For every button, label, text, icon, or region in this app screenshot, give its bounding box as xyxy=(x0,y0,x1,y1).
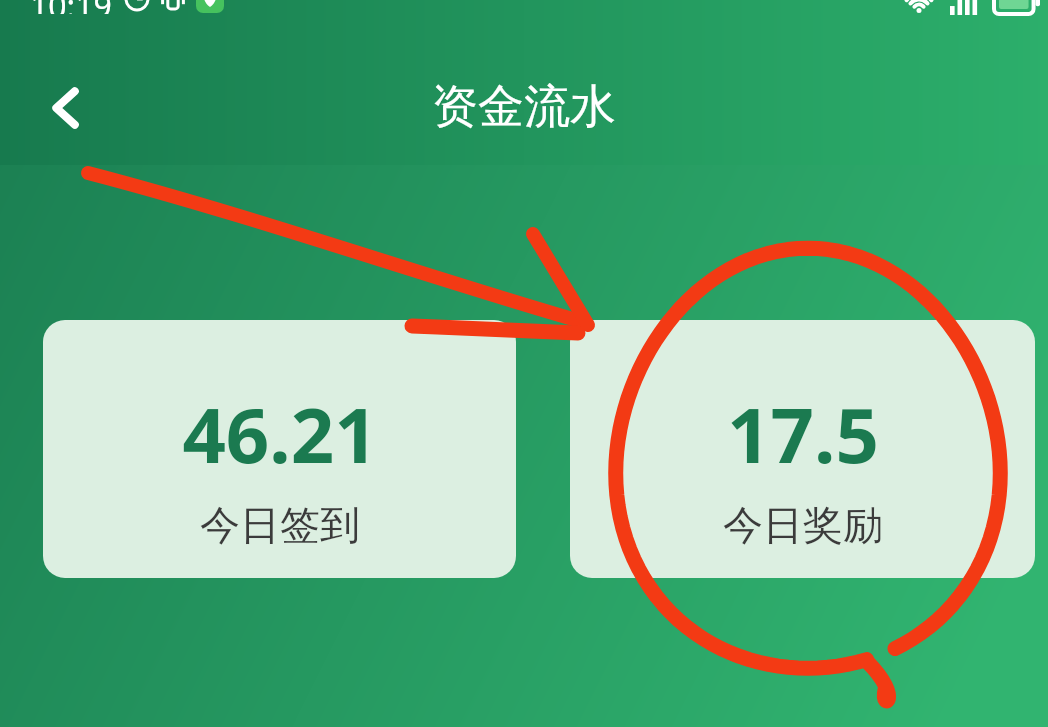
staticText: 今日奖励 xyxy=(723,500,883,550)
button[interactable]: 17.5 xyxy=(570,320,1035,578)
staticText: 17.5 xyxy=(727,382,879,486)
staticText: 今日签到 xyxy=(200,500,360,550)
button[interactable]: Back xyxy=(24,66,108,150)
button[interactable]: 46.21 xyxy=(43,320,516,578)
staticText: 46.21 xyxy=(182,382,378,486)
staticText: 10:19 xyxy=(30,0,112,14)
staticText: 资金流水 xyxy=(432,78,616,136)
